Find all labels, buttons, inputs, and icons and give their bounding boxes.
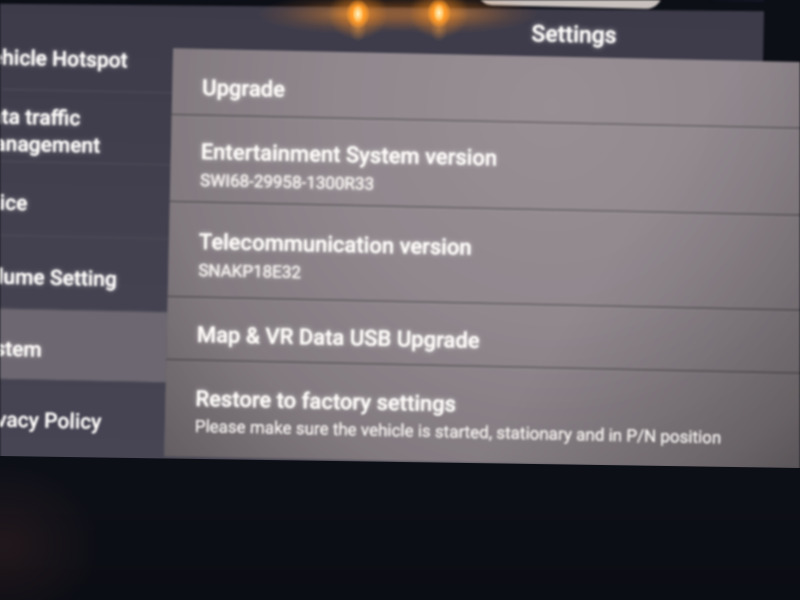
staticText: Voice <box>0 190 28 216</box>
staticText: System <box>0 336 43 362</box>
staticText: Vehicle Hotspot <box>0 45 128 73</box>
staticText: System <box>0 336 43 362</box>
staticText: Volume Setting <box>0 264 117 292</box>
staticText: Restore to factory settings <box>195 386 457 418</box>
staticText: Vehicle Hotspot <box>0 45 128 73</box>
staticText: Privacy Policy <box>0 407 102 435</box>
staticText: Restore to factory settings <box>195 386 457 418</box>
button[interactable] <box>166 296 800 375</box>
staticText: Data traffic management <box>0 104 102 158</box>
staticText: Entertainment System version <box>201 139 498 171</box>
button[interactable]: Privacy Policy <box>0 378 166 453</box>
button[interactable]: System <box>0 308 167 382</box>
staticText: SNAKP18E32 <box>198 260 301 282</box>
button[interactable] <box>166 296 800 375</box>
button[interactable] <box>168 201 800 311</box>
button[interactable]: Data traffic management <box>1 89 172 164</box>
button[interactable] <box>164 359 800 471</box>
button[interactable]: Settings <box>531 20 618 49</box>
button[interactable] <box>170 114 800 216</box>
staticText: Voice <box>0 190 28 216</box>
button[interactable] <box>172 48 800 130</box>
button[interactable] <box>170 114 800 216</box>
staticText: SWI68-29958-1300R33 <box>200 170 374 194</box>
button[interactable] <box>164 359 800 471</box>
staticText: Entertainment System version <box>201 139 498 171</box>
staticText: Upgrade <box>202 75 285 103</box>
button[interactable]: Settings <box>531 20 618 49</box>
staticText: SWI68-29958-1300R33 <box>200 170 374 194</box>
button[interactable]: Volume Setting <box>0 235 169 311</box>
staticText: Volume Setting <box>0 264 117 292</box>
staticText: Please make sure the vehicle is started,… <box>195 416 722 447</box>
button[interactable]: Vehicle Hotspot <box>2 17 174 92</box>
staticText: Telecommunication version <box>199 229 472 261</box>
button[interactable]: Voice <box>0 161 171 238</box>
staticText: Settings <box>531 20 618 49</box>
staticText: Telecommunication version <box>199 229 472 261</box>
staticText: Upgrade <box>202 75 285 103</box>
button[interactable] <box>168 201 800 311</box>
staticText: Data traffic management <box>0 104 102 158</box>
staticText: Map & VR Data USB Upgrade <box>197 322 480 354</box>
staticText: Privacy Policy <box>0 407 102 435</box>
button[interactable]: Vehicle Hotspot <box>2 17 174 92</box>
staticText: Map & VR Data USB Upgrade <box>197 322 480 354</box>
button[interactable] <box>172 48 800 130</box>
button[interactable]: Data traffic management <box>1 89 172 164</box>
staticText: Settings <box>531 20 618 49</box>
button[interactable]: Voice <box>0 161 171 238</box>
button[interactable]: Volume Setting <box>0 235 169 311</box>
button[interactable]: System <box>0 308 167 382</box>
staticText: SNAKP18E32 <box>198 260 301 282</box>
button[interactable]: Privacy Policy <box>0 378 166 453</box>
staticText: Please make sure the vehicle is started,… <box>195 416 722 447</box>
